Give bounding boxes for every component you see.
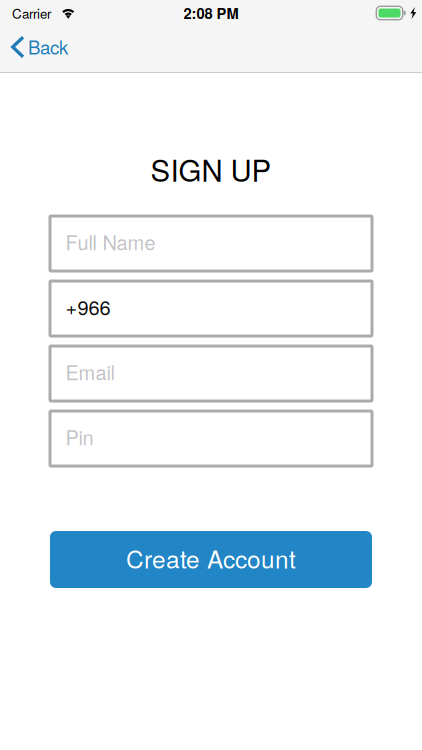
button[interactable]: Full Name — [50, 216, 372, 271]
staticText: Pin — [65, 422, 93, 451]
button[interactable]: Pin — [50, 411, 372, 466]
button[interactable]: Email — [50, 346, 372, 401]
staticText: Email — [65, 357, 114, 386]
staticText: +966 — [65, 292, 110, 321]
button[interactable]: Create Account — [50, 531, 372, 588]
staticText: Create Account — [126, 540, 296, 575]
staticText: SIGN UP — [150, 148, 271, 190]
staticText: Carrier — [12, 3, 51, 23]
staticText: 2:08 PM — [183, 2, 238, 23]
button[interactable]: +966 — [50, 281, 372, 336]
staticText: Full Name — [65, 227, 155, 256]
staticText: Back — [28, 33, 68, 60]
button[interactable]: Back — [0, 26, 80, 73]
